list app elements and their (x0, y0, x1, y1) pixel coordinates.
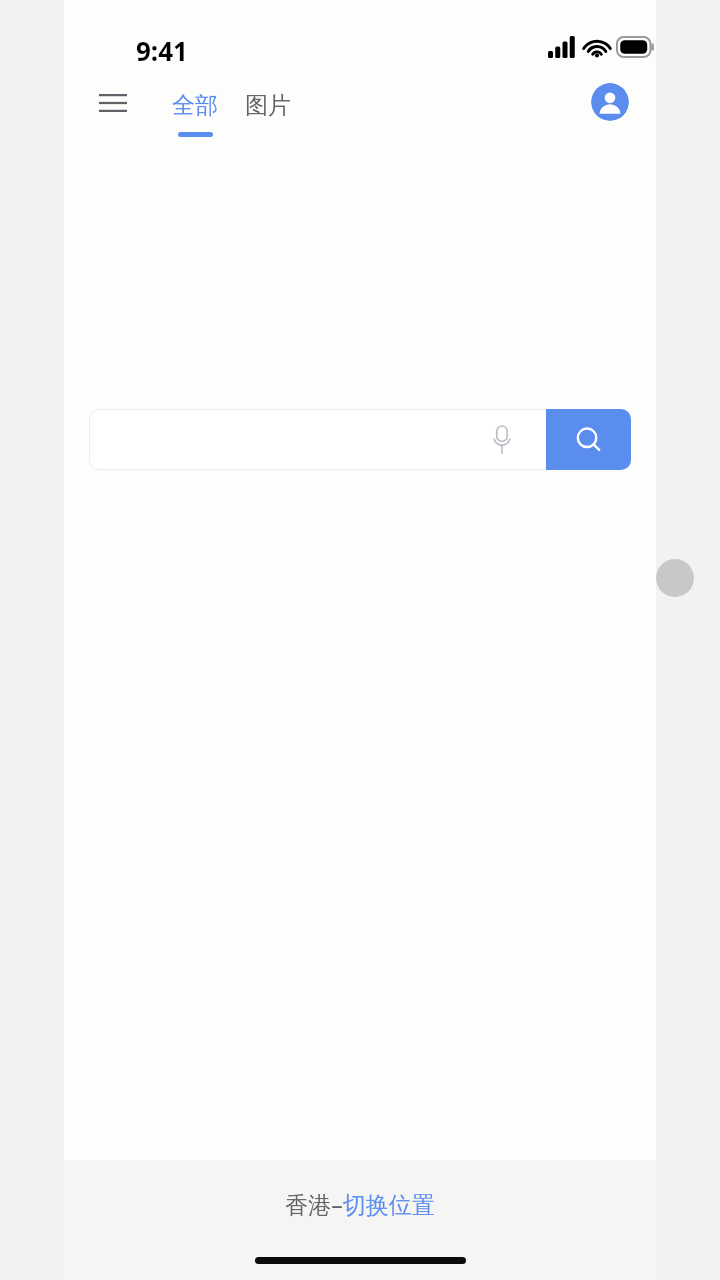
button[interactable]: Menu (88, 80, 138, 126)
button[interactable]: Account (591, 83, 629, 121)
button[interactable]: 图片 (234, 78, 302, 130)
staticText: 香港–切换位置 (285, 1188, 435, 1219)
staticText: 图片 (245, 91, 291, 120)
button[interactable]: 全部 (161, 78, 229, 140)
button[interactable]: 香港–切换位置 (285, 1188, 435, 1219)
button[interactable]: Assistant (656, 559, 694, 597)
button[interactable]: Search (546, 409, 631, 470)
staticText: 全部 (172, 91, 218, 120)
button[interactable]: Voice search (478, 412, 526, 467)
staticText: 9:41 (136, 33, 188, 68)
